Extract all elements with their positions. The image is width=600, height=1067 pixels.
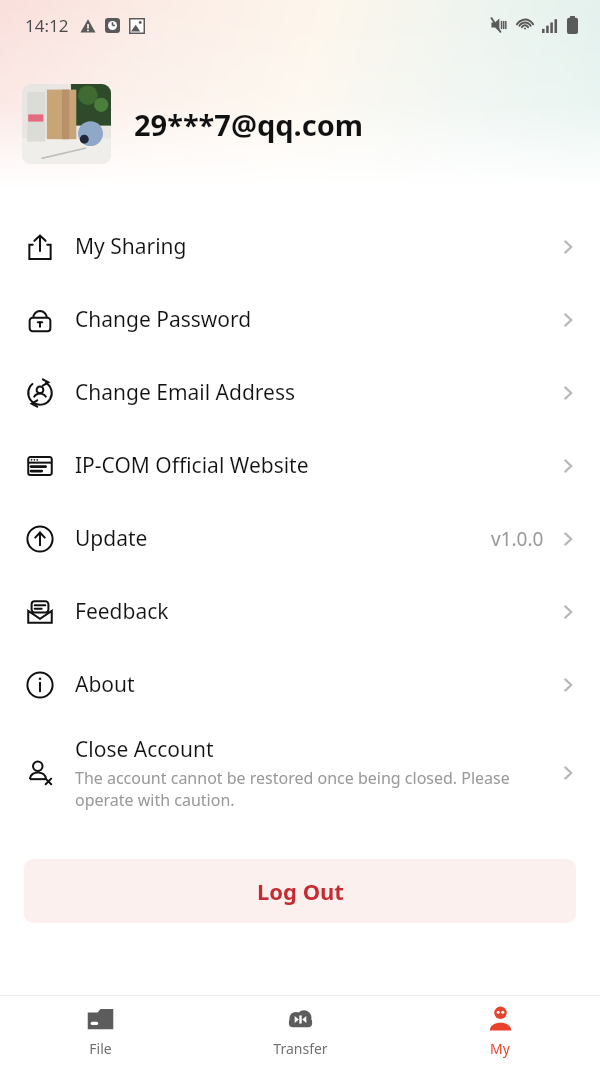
staticText: Update — [75, 524, 148, 553]
button[interactable]: Feedback — [0, 575, 600, 648]
button[interactable]: Change Password — [0, 283, 600, 356]
button[interactable]: About — [0, 648, 600, 721]
button[interactable]: IP-COM Official Website — [0, 429, 600, 502]
staticText: File — [89, 1039, 112, 1058]
staticText: Change Email Address — [75, 378, 296, 407]
staticText: Close Account — [75, 735, 214, 764]
staticText: IP-COM Official Website — [75, 451, 309, 480]
button[interactable]: My — [400, 996, 600, 1067]
staticText: My — [490, 1039, 510, 1058]
staticText: Feedback — [75, 597, 169, 626]
staticText: Log Out — [257, 876, 344, 906]
button[interactable]: Log Out — [24, 859, 576, 923]
button[interactable]: Transfer — [200, 996, 400, 1067]
button[interactable]: My Sharing — [0, 210, 600, 283]
staticText: My Sharing — [75, 232, 187, 261]
staticText: 14:12 — [25, 14, 69, 37]
staticText: About — [75, 670, 135, 699]
button[interactable]: Change Email Address — [0, 356, 600, 429]
button[interactable]: File — [0, 996, 200, 1067]
staticText: Transfer — [273, 1039, 328, 1058]
staticText: Change Password — [75, 305, 252, 334]
button[interactable]: Update — [0, 502, 600, 575]
staticText: v1.0.0 — [491, 526, 544, 552]
staticText: The account cannot be restored once bein… — [75, 767, 546, 811]
button[interactable]: Close Account — [0, 721, 600, 825]
staticText: 29***7@qq.com — [134, 105, 364, 144]
